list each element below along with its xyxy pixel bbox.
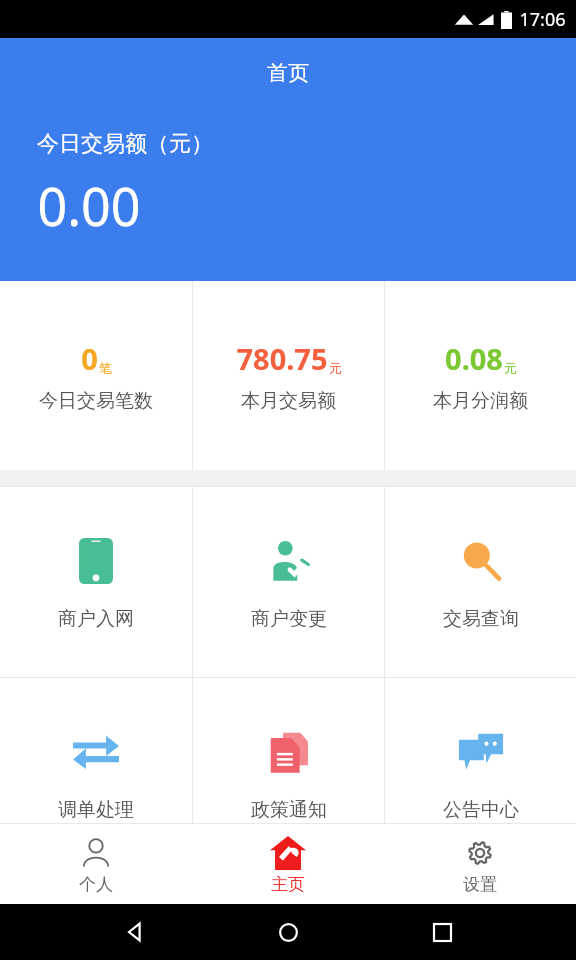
button[interactable]: 公告中心 [385, 678, 576, 868]
button[interactable]: 商户入网 [0, 487, 192, 677]
staticText: 笔 [99, 360, 112, 376]
staticText: 商户入网 [58, 607, 134, 631]
staticText: 元 [329, 360, 342, 376]
staticText: 首页 [267, 60, 309, 86]
staticText: 主页 [271, 874, 305, 895]
other: 设置 [464, 837, 496, 869]
staticText: 0 [81, 339, 98, 378]
staticText: 交易查询 [443, 607, 519, 631]
staticText: 本月分润额 [433, 389, 528, 413]
staticText: 政策通知 [251, 798, 327, 822]
other: 主页 [270, 836, 306, 870]
button[interactable]: 780.75 [193, 281, 384, 470]
staticText: 个人 [79, 874, 113, 895]
button[interactable]: 调单处理 [0, 678, 192, 868]
button[interactable]: 0.08 [385, 281, 576, 470]
staticText: 0.00 [37, 170, 141, 241]
staticText: 780.75 [236, 339, 328, 378]
button[interactable]: 主页 [192, 824, 384, 904]
staticText: 调单处理 [58, 798, 134, 822]
staticText: 商户变更 [251, 607, 327, 631]
button[interactable]: 交易查询 [385, 487, 576, 677]
button[interactable]: 政策通知 [193, 678, 384, 868]
staticText: 元 [504, 360, 517, 376]
button[interactable]: 设置 [384, 824, 576, 904]
other: 个人 [80, 837, 112, 869]
button[interactable]: 商户变更 [193, 487, 384, 677]
button[interactable]: 个人 [0, 824, 192, 904]
staticText: 0.08 [445, 339, 503, 378]
staticText: 设置 [463, 874, 497, 895]
staticText: 17:06 [519, 7, 566, 32]
staticText: 今日交易笔数 [39, 389, 153, 413]
staticText: 今日交易额（元） [37, 130, 213, 158]
staticText: 公告中心 [443, 798, 519, 822]
button[interactable]: 0 [0, 281, 192, 470]
staticText: 本月交易额 [241, 389, 336, 413]
